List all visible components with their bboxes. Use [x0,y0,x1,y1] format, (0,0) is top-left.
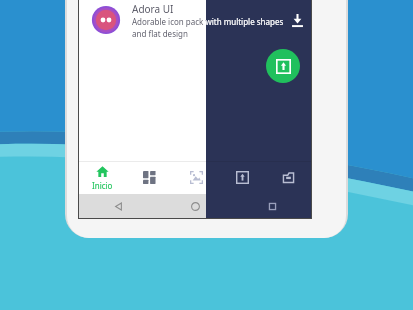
staticText: Adora UI [132,2,174,16]
staticText: and flat design [132,28,188,39]
button[interactable]: Home [79,161,126,194]
button[interactable]: Download [291,14,304,27]
button[interactable]: Wallpapers [173,161,219,194]
staticText: Adorable icon pack with multiple shapes [132,16,206,27]
button[interactable]: Back [79,194,157,218]
staticText: Inicio [92,180,113,191]
button[interactable]: Icons [126,161,173,194]
button[interactable]: Apply [219,161,265,194]
button[interactable]: More [265,161,311,194]
button[interactable]: Apply icon pack [266,49,300,83]
staticText: and flat design [132,28,188,39]
button[interactable]: Home [157,194,234,218]
staticText: Adorable icon pack with multiple shapes [132,16,284,27]
button[interactable]: Recents [234,194,311,218]
button[interactable]: Adora UI [79,0,311,48]
